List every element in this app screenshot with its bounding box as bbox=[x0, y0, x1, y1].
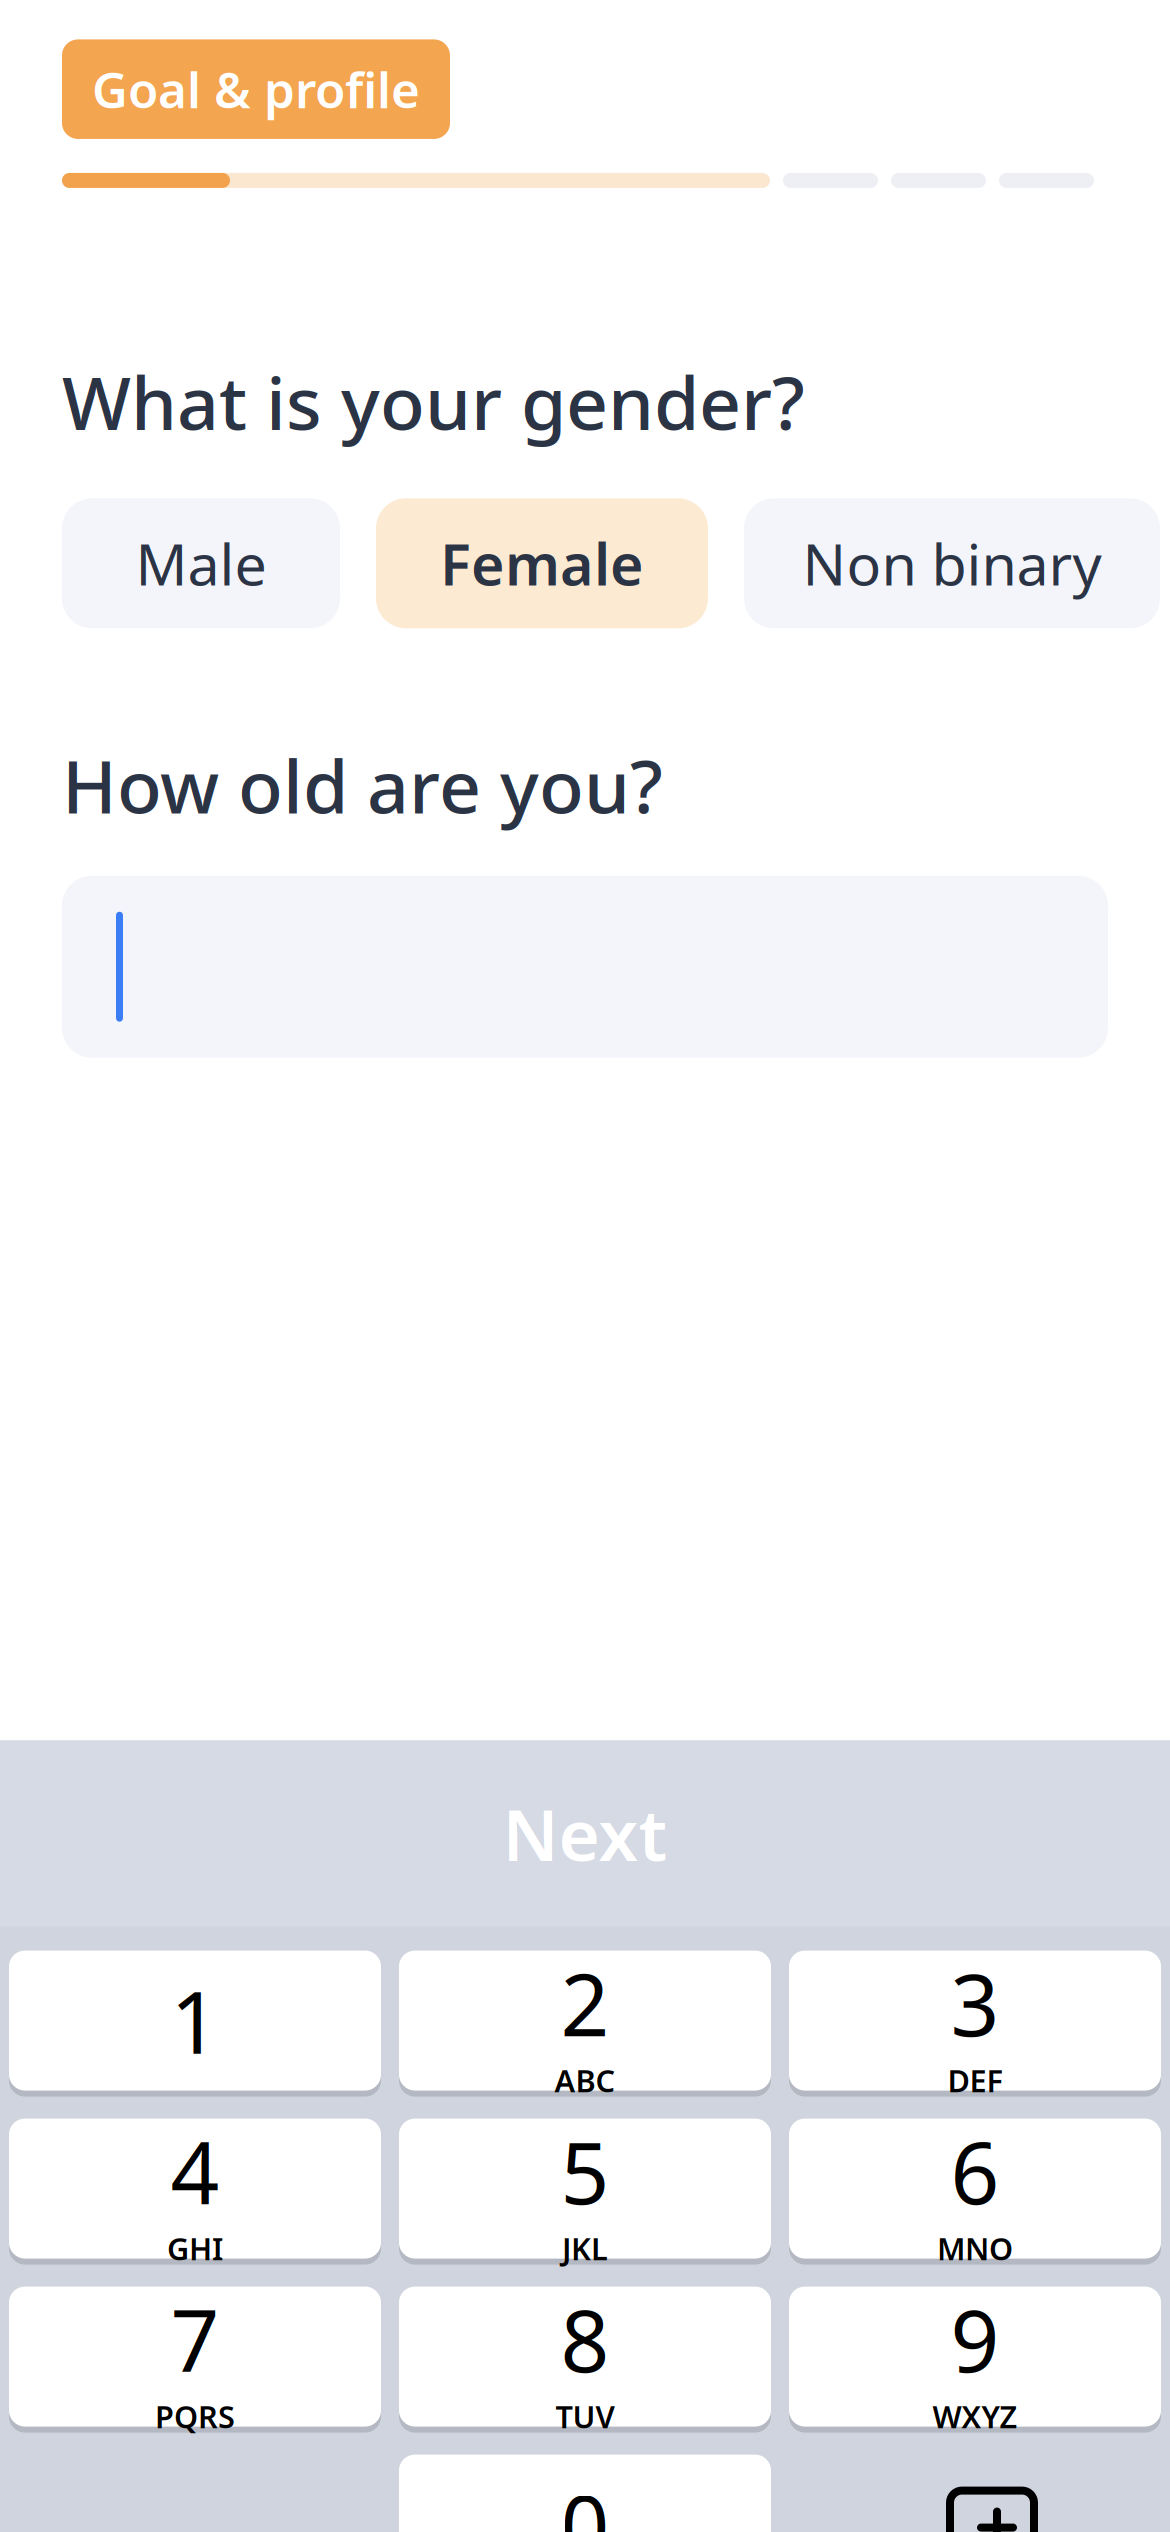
staticText: Next bbox=[502, 1787, 667, 1880]
staticText: 3 bbox=[950, 1946, 999, 2060]
button[interactable]: Goal & profile bbox=[62, 39, 450, 139]
staticText: Female bbox=[440, 525, 644, 601]
staticText: TUV bbox=[555, 2396, 614, 2437]
staticText: JKL bbox=[562, 2228, 608, 2269]
button[interactable]: 0 bbox=[399, 2455, 771, 2532]
button[interactable] bbox=[62, 876, 1108, 1058]
button[interactable]: 7 bbox=[9, 2287, 381, 2433]
staticText: 9 bbox=[950, 2282, 999, 2396]
button[interactable]: 3 bbox=[789, 1951, 1161, 2097]
staticText: 1 bbox=[170, 1964, 219, 2077]
staticText: DEF bbox=[947, 2060, 1002, 2101]
button[interactable]: Delete bbox=[789, 2455, 1161, 2532]
button[interactable]: 6 bbox=[789, 2119, 1161, 2265]
staticText: ABC bbox=[554, 2060, 615, 2101]
staticText: How old are you? bbox=[62, 736, 663, 834]
staticText: Goal & profile bbox=[92, 56, 420, 122]
staticText: 6 bbox=[950, 2114, 999, 2228]
button[interactable]: Female bbox=[376, 498, 708, 628]
button[interactable]: 4 bbox=[9, 2119, 381, 2265]
staticText: MNO bbox=[937, 2228, 1013, 2269]
button[interactable]: Next bbox=[0, 1741, 1170, 1927]
button[interactable]: 8 bbox=[399, 2287, 771, 2433]
staticText: What is your gender? bbox=[62, 353, 805, 450]
button[interactable]: 9 bbox=[789, 2287, 1161, 2433]
button[interactable]: Non binary bbox=[744, 498, 1160, 628]
button[interactable]: 5 bbox=[399, 2119, 771, 2265]
staticText: 8 bbox=[560, 2282, 609, 2396]
staticText: 7 bbox=[170, 2282, 219, 2396]
staticText: 0 bbox=[560, 2468, 609, 2532]
staticText: WXYZ bbox=[932, 2396, 1017, 2437]
staticText: 2 bbox=[560, 1946, 609, 2060]
staticText: 4 bbox=[170, 2114, 219, 2228]
staticText: GHI bbox=[167, 2228, 223, 2269]
staticText: PQRS bbox=[155, 2396, 235, 2437]
staticText: Male bbox=[135, 525, 266, 601]
staticText: Non binary bbox=[802, 525, 1101, 601]
button[interactable]: 2 bbox=[399, 1951, 771, 2097]
button[interactable]: 1 bbox=[9, 1951, 381, 2097]
staticText: 5 bbox=[560, 2114, 609, 2228]
button[interactable]: Male bbox=[62, 498, 340, 628]
